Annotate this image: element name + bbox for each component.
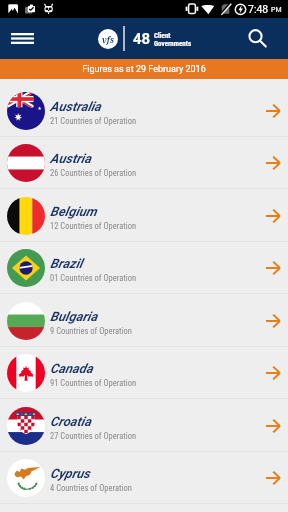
staticText: Governments	[154, 40, 192, 48]
staticText: Australia	[50, 99, 101, 114]
staticText: 12 Countries of Operation	[50, 221, 137, 231]
button[interactable]: Belgium	[0, 190, 288, 242]
staticText: 4 Countries of Operation	[50, 483, 132, 493]
staticText: Brazil	[50, 256, 83, 271]
button[interactable]: Austria	[0, 137, 288, 189]
staticText: 48	[133, 30, 151, 48]
staticText: 21 Countries of Operation	[50, 116, 137, 126]
staticText: Client	[154, 32, 171, 40]
staticText: Figures as at 29 February 2016	[82, 64, 206, 75]
staticText: 7:48	[248, 3, 269, 15]
staticText: Bulgaria	[50, 309, 98, 324]
staticText: 27 Countries of Operation	[50, 431, 137, 441]
staticText: vfs	[102, 34, 115, 45]
staticText: Croatia	[50, 414, 91, 429]
button[interactable]: Brazil	[0, 242, 288, 294]
button[interactable]: Cyprus	[0, 452, 288, 504]
staticText: Belgium	[50, 204, 97, 219]
staticText: Canada	[50, 361, 93, 376]
button[interactable]: Australia	[0, 85, 288, 137]
staticText: 9 Countries of Operation	[50, 326, 132, 336]
staticText: PM	[271, 6, 282, 14]
button[interactable]: Bulgaria	[0, 295, 288, 347]
staticText: 01 Countries of Operation	[50, 273, 137, 283]
button[interactable]: Search	[242, 18, 288, 59]
button[interactable]: Croatia	[0, 400, 288, 452]
staticText: Cyprus	[50, 466, 90, 481]
staticText: 91 Countries of Operation	[50, 378, 137, 388]
staticText: 26 Countries of Operation	[50, 168, 137, 178]
button[interactable]: Open navigation menu	[0, 18, 44, 59]
staticText: Austria	[50, 151, 91, 166]
button[interactable]: Canada	[0, 347, 288, 399]
